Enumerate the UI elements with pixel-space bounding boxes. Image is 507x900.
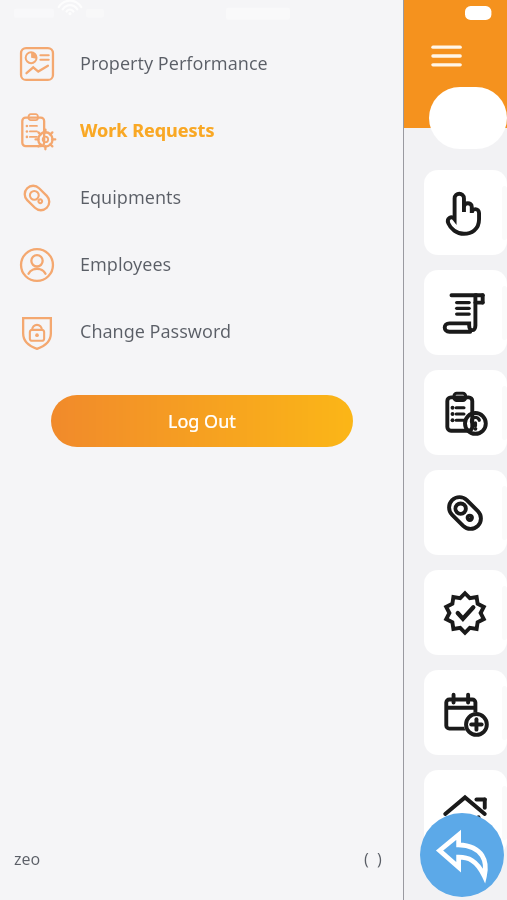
- staticText: Equipments: [80, 185, 182, 210]
- button[interactable]: Property Performance: [0, 30, 404, 97]
- button[interactable]: [429, 87, 507, 149]
- button[interactable]: Log Out: [51, 395, 353, 447]
- button[interactable]: Change Password: [0, 298, 404, 365]
- button[interactable]: Work Requests: [0, 97, 404, 164]
- staticText: Employees: [80, 252, 172, 277]
- other: Request help: [439, 387, 491, 439]
- button[interactable]: Tap: [424, 170, 507, 255]
- button[interactable]: Schedule: [424, 670, 507, 755]
- staticText: Property Performance: [80, 51, 268, 76]
- button[interactable]: Property: [424, 770, 507, 855]
- other: Document: [439, 287, 491, 339]
- button[interactable]: Back: [420, 813, 504, 897]
- other: Employees: [16, 244, 58, 286]
- staticText: Work Requests: [80, 118, 215, 143]
- other: Tap: [439, 187, 491, 239]
- button[interactable]: Equipment: [424, 470, 507, 555]
- other: Equipment: [439, 487, 491, 539]
- button[interactable]: Employees: [0, 231, 404, 298]
- other: Change Password: [16, 311, 58, 353]
- button[interactable]: Request help: [424, 370, 507, 455]
- other: Schedule: [439, 687, 491, 739]
- staticText: zeo: [14, 848, 41, 870]
- other: Property: [439, 787, 491, 839]
- button[interactable]: Document: [424, 270, 507, 355]
- button[interactable]: Open navigation menu: [425, 34, 469, 78]
- button[interactable]: Verified: [424, 570, 507, 655]
- staticText: Change Password: [80, 319, 232, 344]
- other: Property Performance: [16, 43, 58, 85]
- staticText: ( ): [364, 848, 382, 870]
- other: Verified: [439, 587, 491, 639]
- other: Work Requests: [16, 110, 58, 152]
- other: Equipments: [16, 177, 58, 219]
- staticText: Log Out: [168, 409, 236, 434]
- button[interactable]: Equipments: [0, 164, 404, 231]
